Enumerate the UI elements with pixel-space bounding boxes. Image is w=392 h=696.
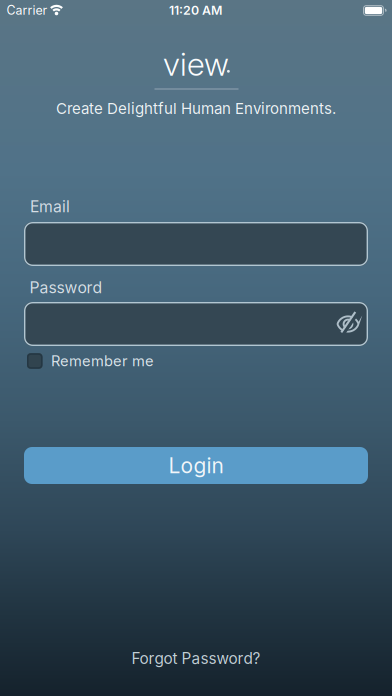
staticText: Carrier <box>6 3 47 18</box>
button[interactable]: Remember me <box>27 352 154 370</box>
staticText: Create Delightful Human Environments. <box>56 99 336 118</box>
button[interactable]: Login <box>24 447 368 484</box>
staticText: Login <box>168 453 223 478</box>
staticText: Password <box>29 278 102 297</box>
staticText: 11:20 AM <box>169 3 222 18</box>
staticText: Remember me <box>51 352 154 370</box>
staticText: view <box>163 45 229 83</box>
staticText: Forgot Password? <box>131 649 260 668</box>
button[interactable]: Forgot Password? <box>131 649 260 668</box>
button[interactable]: Show password <box>333 309 363 339</box>
staticText: Email <box>30 197 70 216</box>
